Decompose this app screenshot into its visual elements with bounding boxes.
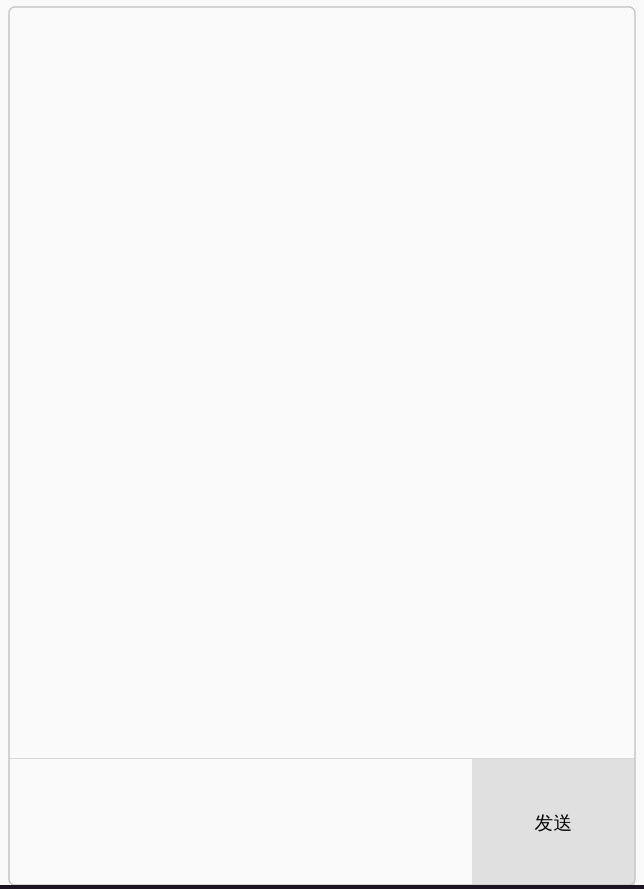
button[interactable]: 发送 (472, 759, 635, 885)
staticText: 发送 (534, 811, 572, 834)
